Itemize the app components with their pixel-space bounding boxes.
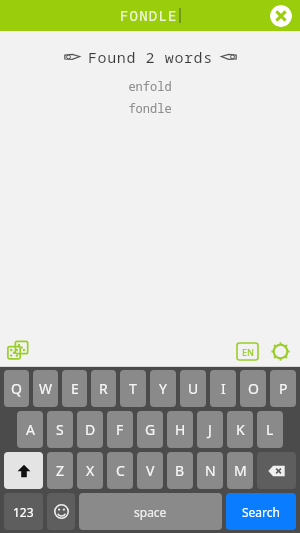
staticText: K bbox=[236, 420, 245, 439]
staticText: N bbox=[205, 461, 216, 480]
button[interactable]: Random word bbox=[5, 338, 31, 364]
button[interactable]: O bbox=[240, 370, 266, 407]
button[interactable]: EN bbox=[237, 343, 258, 360]
button[interactable]: E bbox=[62, 370, 87, 407]
staticText: E bbox=[71, 379, 79, 398]
staticText: Y bbox=[159, 379, 167, 398]
staticText: D bbox=[85, 420, 96, 439]
staticText: P bbox=[279, 379, 288, 398]
staticText: G bbox=[145, 420, 156, 439]
button[interactable]: fondle bbox=[0, 100, 300, 116]
button[interactable]: H bbox=[167, 411, 193, 448]
staticText: M bbox=[234, 461, 247, 480]
button[interactable]: Close bbox=[270, 5, 292, 27]
staticText: J bbox=[208, 420, 212, 439]
staticText: Q bbox=[11, 379, 22, 398]
button[interactable]: S bbox=[47, 411, 73, 448]
button[interactable]: M bbox=[227, 452, 253, 489]
button[interactable]: J bbox=[197, 411, 223, 448]
staticText: L bbox=[266, 420, 274, 439]
button[interactable]: A bbox=[17, 411, 43, 448]
staticText: A bbox=[26, 420, 35, 439]
button[interactable]: Settings bbox=[268, 339, 292, 363]
button[interactable]: V bbox=[137, 452, 163, 489]
button[interactable]: B bbox=[167, 452, 193, 489]
button[interactable]: K bbox=[227, 411, 253, 448]
staticText: F bbox=[116, 420, 124, 439]
staticText: Found 2 words bbox=[88, 47, 213, 67]
button[interactable]: I bbox=[210, 370, 236, 407]
staticText: X bbox=[86, 461, 95, 480]
button[interactable]: Shift bbox=[4, 452, 43, 489]
button[interactable]: F bbox=[107, 411, 133, 448]
staticText: FONDLE bbox=[120, 6, 178, 25]
button[interactable]: Backspace bbox=[257, 452, 296, 489]
button[interactable]: P bbox=[270, 370, 296, 407]
button[interactable]: W bbox=[33, 370, 58, 407]
staticText: S bbox=[56, 420, 64, 439]
staticText: H bbox=[175, 420, 186, 439]
button[interactable]: D bbox=[77, 411, 103, 448]
button[interactable]: N bbox=[197, 452, 223, 489]
button[interactable]: 123 bbox=[4, 493, 43, 530]
staticText: W bbox=[39, 379, 53, 398]
staticText: EN bbox=[242, 346, 254, 358]
button[interactable]: enfold bbox=[0, 78, 300, 94]
staticText: T bbox=[129, 379, 137, 398]
staticText: B bbox=[175, 461, 185, 480]
staticText: C bbox=[116, 461, 125, 480]
staticText: enfold bbox=[128, 78, 172, 94]
button[interactable]: Q bbox=[4, 370, 29, 407]
staticText: fondle bbox=[128, 100, 172, 116]
button[interactable]: X bbox=[77, 452, 103, 489]
staticText: U bbox=[188, 379, 199, 398]
button[interactable]: R bbox=[91, 370, 116, 407]
button[interactable]: C bbox=[107, 452, 133, 489]
button[interactable]: Y bbox=[150, 370, 176, 407]
staticText: O bbox=[248, 379, 259, 398]
button[interactable]: Z bbox=[47, 452, 73, 489]
button[interactable]: U bbox=[180, 370, 206, 407]
button[interactable]: Search bbox=[226, 493, 296, 530]
staticText: R bbox=[99, 379, 108, 398]
button[interactable]: Emoji bbox=[47, 493, 75, 530]
staticText: I bbox=[221, 379, 226, 398]
button[interactable]: T bbox=[120, 370, 146, 407]
staticText: Search bbox=[242, 504, 280, 520]
button[interactable]: space bbox=[79, 493, 222, 530]
button[interactable]: L bbox=[257, 411, 283, 448]
staticText: 123 bbox=[13, 504, 34, 520]
staticText: V bbox=[146, 461, 155, 480]
staticText: Z bbox=[56, 461, 65, 480]
staticText: space bbox=[134, 504, 167, 520]
button[interactable]: G bbox=[137, 411, 163, 448]
